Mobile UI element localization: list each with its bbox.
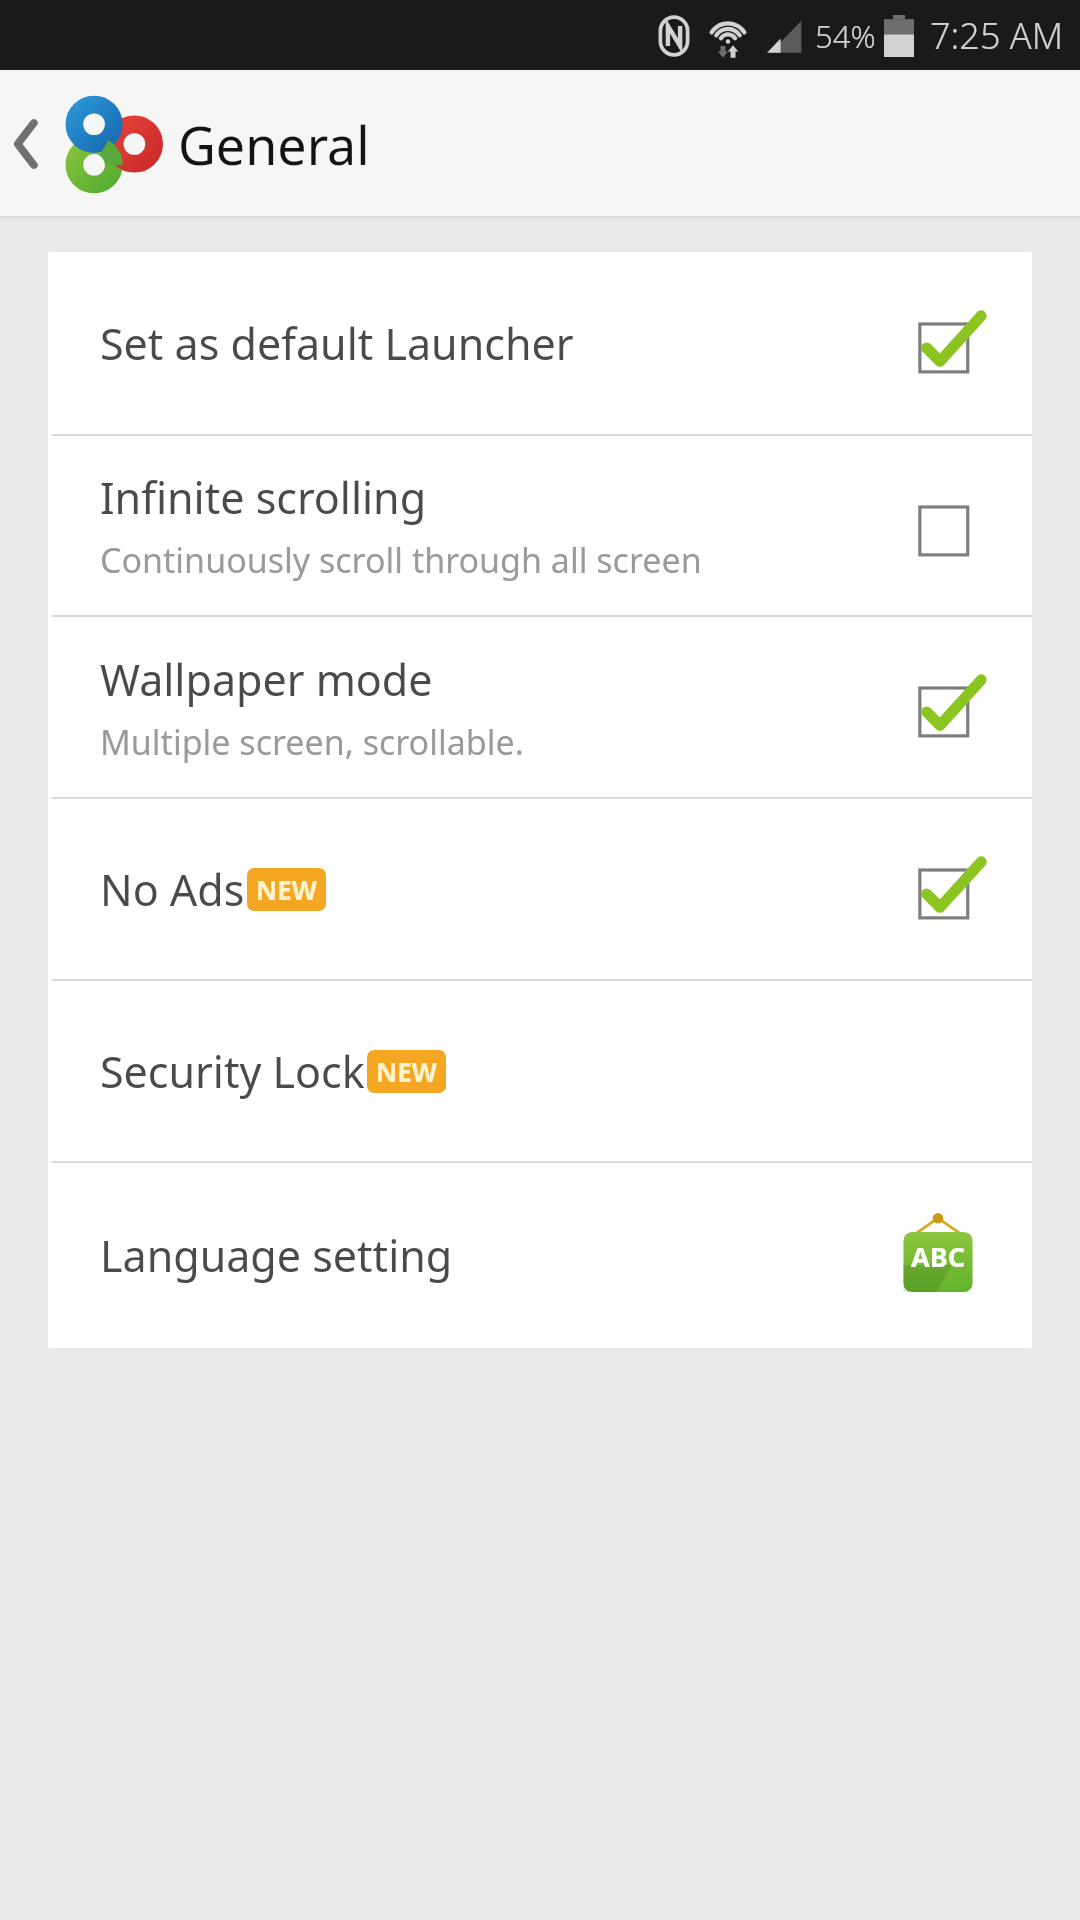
staticText: NEW — [256, 872, 317, 907]
staticText: NEW — [376, 1054, 437, 1089]
button[interactable]: Set as default Launcher — [48, 252, 1032, 434]
button[interactable]: Unchecked — [910, 488, 986, 564]
button[interactable]: Language setting — [48, 1163, 1032, 1348]
staticText: 7:25 AM — [930, 11, 1064, 60]
button[interactable]: Checked — [910, 851, 986, 927]
staticText: Wallpaper mode — [100, 650, 433, 709]
staticText: No Ads — [100, 860, 245, 919]
button[interactable]: Security Lock — [48, 981, 1032, 1161]
staticText: Security Lock — [100, 1042, 365, 1101]
staticText: Language setting — [100, 1226, 453, 1285]
staticText: ABC — [911, 1238, 965, 1275]
button[interactable]: Checked — [910, 669, 986, 745]
staticText: Set as default Launcher — [100, 314, 574, 373]
staticText: General — [178, 109, 370, 180]
button[interactable]: No Ads — [48, 799, 1032, 979]
button[interactable]: Language setting — [890, 1213, 986, 1299]
staticText: Infinite scrolling — [100, 468, 427, 527]
button[interactable]: Checked — [910, 305, 986, 381]
staticText: Continuously scroll through all screen — [100, 537, 702, 583]
button[interactable]: Back — [0, 70, 52, 218]
button[interactable]: Wallpaper mode — [48, 617, 1032, 797]
button[interactable]: Infinite scrolling — [48, 436, 1032, 615]
staticText: Multiple screen, scrollable. — [100, 719, 524, 765]
staticText: 54% — [815, 15, 876, 57]
